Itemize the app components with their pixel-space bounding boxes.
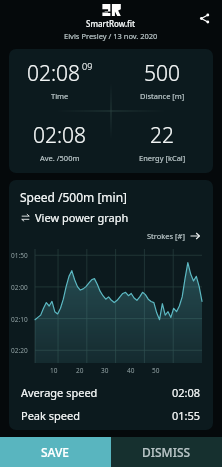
staticText: 20 xyxy=(76,366,84,375)
staticText: Distance [m] xyxy=(140,91,185,101)
staticText: 02:08 xyxy=(27,59,81,88)
staticText: Average speed xyxy=(21,385,98,400)
button[interactable]: SAVE xyxy=(0,437,111,467)
button[interactable]: Strokes [#] xyxy=(145,229,202,243)
staticText: 02:10 xyxy=(11,315,28,324)
button[interactable]: DISMISS xyxy=(111,437,222,467)
staticText: Strokes [#] xyxy=(147,231,185,241)
staticText: 01:50 xyxy=(11,251,28,260)
staticText: 40 xyxy=(127,366,135,375)
staticText: SAVE xyxy=(41,444,70,460)
staticText: Energy [kCal] xyxy=(139,153,186,163)
staticText: 02:08 xyxy=(33,121,87,150)
staticText: 500 xyxy=(144,59,180,88)
button[interactable]: Average speed xyxy=(9,381,213,404)
staticText: 02:00 xyxy=(11,283,28,292)
staticText: Peak speed xyxy=(21,408,80,423)
staticText: 02:20 xyxy=(11,346,28,355)
staticText: View power graph xyxy=(35,210,129,225)
staticText: 01:55 xyxy=(172,408,201,423)
button[interactable]: Peak speed xyxy=(9,404,213,427)
button[interactable]: Share xyxy=(192,6,216,30)
staticText: Ave. /500m xyxy=(40,153,80,163)
button[interactable]: View power graph xyxy=(20,209,130,226)
staticText: Time xyxy=(51,91,69,101)
staticText: Speed /500m [min] xyxy=(20,189,128,205)
staticText: 50 xyxy=(152,366,160,375)
staticText: SmartRow.fit xyxy=(86,18,136,29)
staticText: Elvis Presley / 13 nov. 2020 xyxy=(64,31,158,41)
staticText: 10 xyxy=(50,366,58,375)
staticText: DISMISS xyxy=(142,444,191,460)
staticText: 22 xyxy=(150,121,174,150)
staticText: 30 xyxy=(101,366,109,375)
staticText: 02:08 xyxy=(172,385,201,400)
staticText: 09 xyxy=(82,60,93,72)
